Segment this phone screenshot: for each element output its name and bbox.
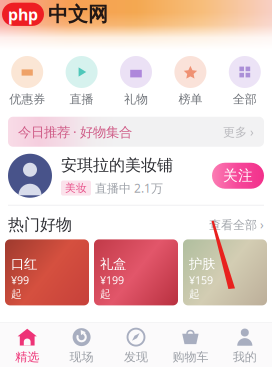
staticText: 精选 <box>15 350 39 364</box>
staticText: php <box>8 4 38 25</box>
staticText: 直播中 2.1万 <box>95 180 163 196</box>
staticText: ¥99 起 <box>11 273 29 300</box>
button[interactable]: 礼物 <box>109 56 163 107</box>
staticText: ¥199 起 <box>100 273 124 300</box>
button[interactable]: 口红 <box>5 239 89 305</box>
button[interactable]: 安琪拉的美妆铺 <box>0 147 272 205</box>
button[interactable]: 直播 <box>54 56 109 107</box>
staticText: 中文网 <box>48 2 108 27</box>
staticText: 今日推荐 · 好物集合 <box>18 123 132 141</box>
staticText: 安琪拉的美妆铺 <box>61 155 173 175</box>
button[interactable]: 全部 <box>218 56 272 107</box>
button[interactable]: 优惠券 <box>0 56 54 107</box>
button[interactable]: 礼盒 <box>94 239 178 305</box>
button[interactable]: 精选 <box>0 322 54 367</box>
staticText: 直播 <box>70 92 94 107</box>
button[interactable]: 我的 <box>218 322 272 367</box>
staticText: 发现 <box>124 350 148 364</box>
button[interactable]: 榜单 <box>163 56 218 107</box>
staticText: 我的 <box>233 350 257 364</box>
button[interactable]: 购物车 <box>163 322 218 367</box>
staticText: 更多 › <box>223 124 254 140</box>
staticText: 购物车 <box>172 350 208 364</box>
staticText: 礼物 <box>124 92 148 107</box>
button[interactable]: 现场 <box>54 322 109 367</box>
staticText: 美妆 <box>65 181 87 195</box>
staticText: 关注 <box>223 167 253 185</box>
staticText: 优惠券 <box>9 92 45 107</box>
staticText: 护肤 <box>189 256 215 272</box>
button[interactable]: 今日推荐 · 好物集合 <box>0 117 272 147</box>
button[interactable]: 查看全部 › <box>209 217 264 232</box>
staticText: 查看全部 › <box>209 217 264 232</box>
button[interactable]: 护肤 <box>183 239 267 305</box>
staticText: 现场 <box>70 350 94 364</box>
staticText: 全部 <box>233 92 257 107</box>
staticText: 榜单 <box>178 92 202 107</box>
staticText: 口红 <box>11 256 37 272</box>
staticText: ¥159 起 <box>189 273 213 300</box>
button[interactable]: 发现 <box>109 322 163 367</box>
staticText: 礼盒 <box>100 256 126 272</box>
staticText: 热门好物 <box>8 215 72 234</box>
